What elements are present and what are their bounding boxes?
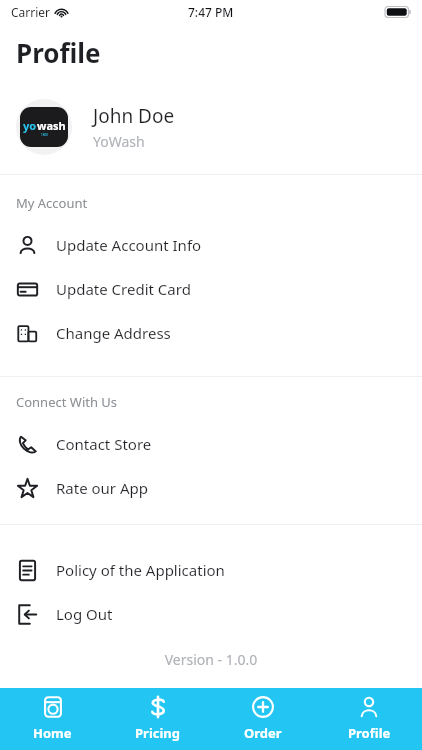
button[interactable]: Contact Store (0, 422, 422, 466)
button[interactable]: Home (0, 688, 105, 750)
button[interactable]: Log Out (0, 592, 422, 636)
button[interactable]: Update Credit Card (0, 267, 422, 311)
button[interactable]: Change Address (0, 311, 422, 355)
staticText: Profile (16, 35, 101, 70)
button[interactable]: Order (210, 688, 316, 750)
button[interactable]: yo (0, 80, 422, 174)
button[interactable]: Policy of the Application (0, 548, 422, 592)
staticText: 1800 (41, 133, 48, 137)
button[interactable]: Pricing (105, 688, 210, 750)
staticText: Version - 1.0.0 (0, 650, 422, 669)
button[interactable]: Rate our App (0, 466, 422, 510)
staticText: Update Credit Card (56, 279, 191, 299)
staticText: YoWash (93, 132, 145, 151)
staticText: Pricing (135, 724, 181, 742)
staticText: 7:47 PM (188, 4, 234, 20)
staticText: yo (23, 118, 37, 133)
staticText: wash (37, 118, 66, 133)
staticText: My Account (16, 194, 88, 212)
staticText: Carrier (11, 4, 51, 20)
staticText: Connect With Us (16, 393, 118, 411)
staticText: Change Address (56, 323, 171, 343)
staticText: Profile (348, 724, 391, 742)
staticText: Contact Store (56, 434, 152, 454)
staticText: Rate our App (56, 478, 148, 498)
button[interactable]: Update Account Info (0, 223, 422, 267)
staticText: Update Account Info (56, 235, 202, 255)
staticText: John Doe (93, 103, 175, 129)
staticText: Home (33, 724, 72, 742)
staticText: Policy of the Application (56, 560, 225, 580)
staticText: Log Out (56, 604, 113, 624)
button[interactable]: Profile (316, 688, 422, 750)
staticText: Order (244, 724, 282, 742)
